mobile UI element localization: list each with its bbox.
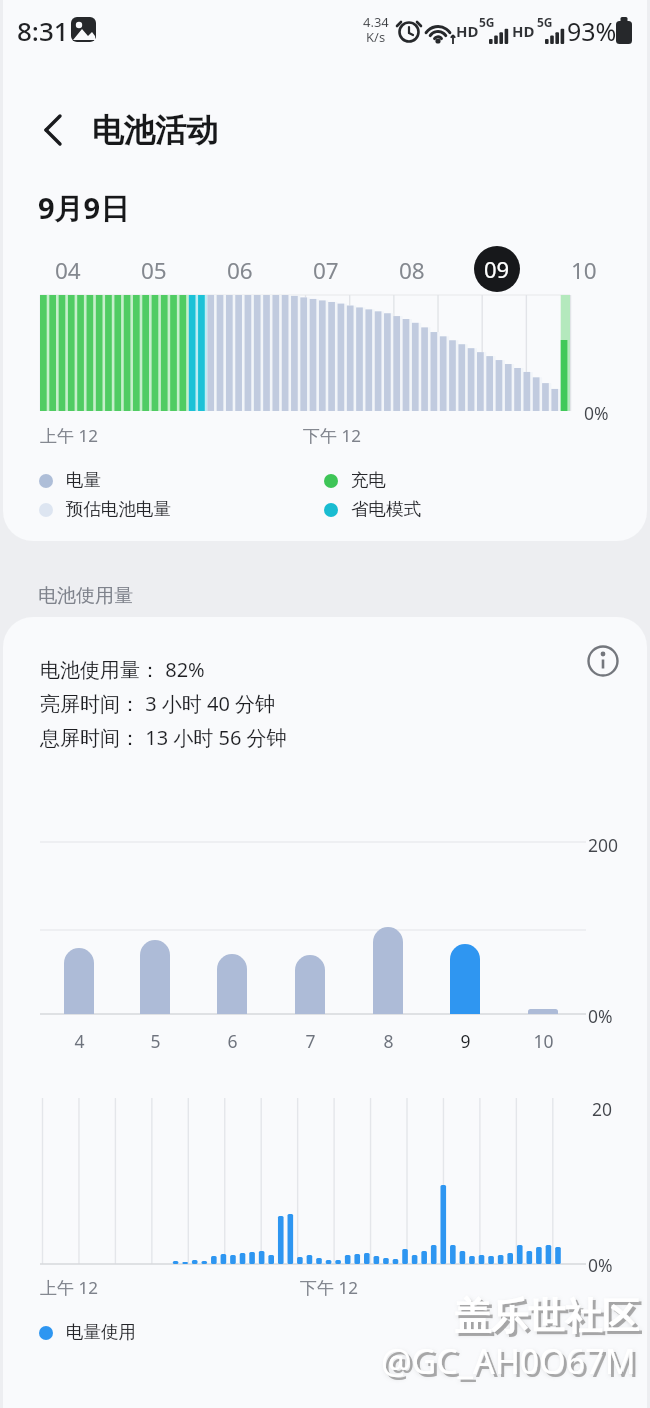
staticText: 充电: [351, 469, 386, 491]
staticText: 盖乐世社区: [457, 1296, 642, 1343]
staticText: 5G: [537, 14, 553, 30]
staticText: 省电模式: [351, 498, 421, 520]
staticText: 10: [533, 1029, 554, 1053]
staticText: 0%: [588, 1253, 613, 1277]
staticText: 09: [484, 254, 510, 284]
staticText: 9月9日: [38, 188, 130, 228]
staticText: 8: [383, 1029, 394, 1053]
button[interactable]: 05: [130, 252, 178, 288]
staticText: 0%: [588, 1004, 613, 1028]
staticText: 预估电池电量: [66, 498, 171, 520]
staticText: 下午 12: [303, 424, 361, 447]
button[interactable]: 07: [302, 252, 350, 288]
staticText: 上午 12: [40, 424, 98, 447]
button[interactable]: 10: [560, 252, 608, 288]
staticText: @GC_AH0O67M: [384, 1341, 639, 1387]
staticText: 08: [399, 255, 425, 286]
button[interactable]: 电池活动: [0, 0, 126, 40]
staticText: @GC_AH0O67M: [381, 1338, 636, 1384]
staticText: HD: [512, 21, 535, 41]
staticText: 下午 12: [300, 1276, 358, 1299]
staticText: 电池使用量： 82%: [40, 656, 205, 683]
staticText: 04: [55, 255, 81, 286]
staticText: 200: [588, 833, 619, 857]
staticText: 亮屏时间： 3 小时 40 分钟: [40, 690, 276, 717]
button[interactable]: 04: [44, 252, 92, 288]
staticText: 20: [592, 1097, 613, 1121]
staticText: 盖乐世社区: [454, 1293, 639, 1340]
button[interactable]: [585, 643, 621, 679]
staticText: 8:31: [17, 13, 69, 48]
staticText: 10: [571, 255, 597, 286]
staticText: 息屏时间： 13 小时 56 分钟: [40, 724, 287, 751]
button[interactable]: [30, 108, 76, 154]
staticText: 06: [227, 255, 253, 286]
staticText: 05: [141, 255, 167, 286]
staticText: K/s: [366, 28, 386, 46]
staticText: 5: [150, 1029, 161, 1053]
staticText: 07: [313, 255, 339, 286]
staticText: 电量使用: [66, 1321, 136, 1343]
staticText: 6: [227, 1029, 238, 1053]
staticText: 上午 12: [40, 1276, 98, 1299]
staticText: 5G: [479, 14, 495, 30]
staticText: 0%: [584, 401, 609, 425]
staticText: 电量: [66, 469, 101, 491]
button[interactable]: 06: [216, 252, 264, 288]
staticText: 7: [305, 1029, 316, 1053]
staticText: 4: [74, 1029, 85, 1053]
staticText: 9: [460, 1029, 471, 1053]
staticText: 4.34: [363, 13, 389, 31]
staticText: 电池使用量: [38, 584, 133, 608]
button[interactable]: 08: [388, 252, 436, 288]
staticText: HD: [456, 21, 479, 41]
staticText: 93%: [567, 14, 617, 48]
button[interactable]: 09: [474, 246, 520, 292]
